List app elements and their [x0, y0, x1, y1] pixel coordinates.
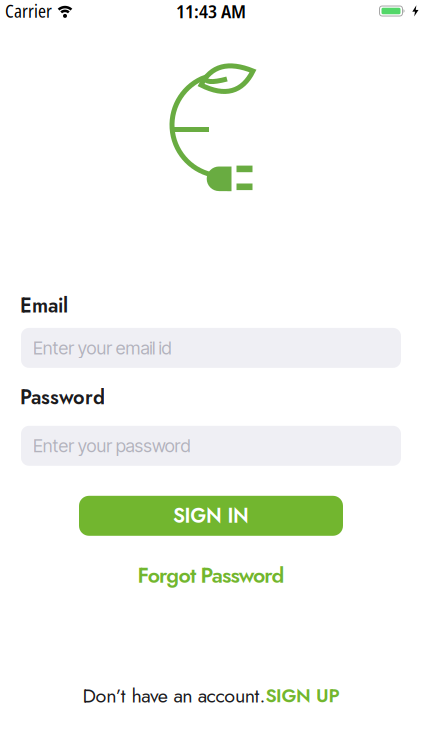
- button[interactable]: Enter your email id: [0, 328, 422, 368]
- staticText: Enter your password: [33, 435, 190, 457]
- button[interactable]: SIGN IN: [79, 496, 343, 536]
- staticText: Carrier: [5, 0, 52, 23]
- staticText: SIGN UP: [265, 682, 339, 709]
- staticText: Email: [20, 291, 68, 320]
- staticText: Don’t have an account.: [83, 681, 265, 710]
- staticText: Forgot Password: [137, 560, 285, 591]
- staticText: 11:43 AM: [176, 0, 246, 24]
- staticText: Password: [20, 383, 105, 412]
- button[interactable]: Enter your password: [0, 426, 422, 466]
- button[interactable]: Don’t have an account.: [83, 681, 339, 710]
- staticText: Enter your email id: [33, 337, 171, 359]
- staticText: SIGN IN: [173, 501, 249, 530]
- button[interactable]: Forgot Password: [137, 560, 285, 591]
